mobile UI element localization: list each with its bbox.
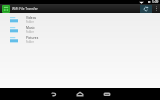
staticText: WiFi File Transfer [12, 7, 38, 11]
button[interactable]: Recent apps [102, 88, 112, 100]
staticText: Folder [26, 20, 34, 24]
staticText: Music [26, 26, 35, 30]
staticText: Folder [26, 40, 34, 44]
button[interactable]: Music [0, 25, 160, 35]
button[interactable]: Back [48, 88, 58, 100]
staticText: Pictures [26, 36, 39, 40]
button[interactable]: App icon, navigate up [2, 5, 10, 13]
button[interactable]: Videos [0, 15, 160, 25]
button[interactable]: Refresh [140, 5, 152, 13]
staticText: 5:09 [152, 0, 159, 4]
button[interactable]: Home [75, 88, 85, 100]
button[interactable]: More options [152, 4, 160, 13]
staticText: Folder [26, 30, 34, 34]
staticText: Videos [26, 16, 37, 20]
button[interactable]: Pictures [0, 35, 160, 45]
